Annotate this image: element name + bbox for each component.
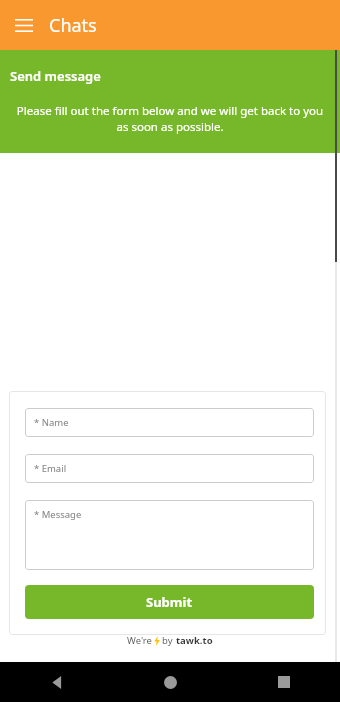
staticText: Chats (49, 13, 97, 38)
button[interactable]: Submit (25, 585, 314, 619)
button[interactable]: We're (0, 634, 340, 647)
staticText: Submit (146, 593, 193, 611)
button[interactable]: Open navigation menu (8, 9, 40, 41)
staticText: * Message (34, 508, 82, 521)
button[interactable]: Recent apps (227, 662, 340, 702)
staticText: Please fill out the form below and we wi… (11, 103, 329, 134)
button[interactable]: * Email (25, 454, 314, 483)
staticText: by (162, 634, 173, 647)
button[interactable]: * Name (25, 408, 314, 437)
staticText: tawk.to (176, 634, 213, 647)
button[interactable]: Back (0, 662, 114, 702)
staticText: We're (127, 634, 152, 647)
button[interactable]: Home (114, 662, 227, 702)
staticText: * Name (34, 416, 69, 429)
staticText: * Email (34, 462, 67, 475)
button[interactable]: * Message (25, 500, 314, 570)
staticText: Send message (10, 67, 101, 85)
